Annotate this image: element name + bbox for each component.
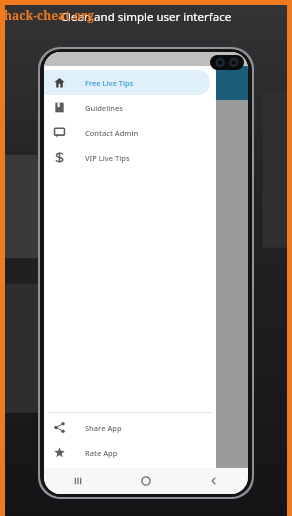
staticText: Contact Admin (85, 128, 139, 138)
button[interactable]: Guidelines (44, 95, 210, 120)
button[interactable]: About (44, 465, 210, 490)
button[interactable]: Rate App (44, 440, 210, 465)
button[interactable]: Home (112, 468, 180, 494)
staticText: Guidelines (85, 103, 123, 113)
button[interactable]: Free Live Tips (44, 70, 210, 95)
staticText: Clean and simple user interface (0, 9, 292, 25)
staticText: Rate App (85, 448, 118, 458)
button[interactable]: Contact Admin (44, 120, 210, 145)
button[interactable]: Recents (44, 468, 112, 494)
staticText: Free Live Tips (85, 78, 134, 88)
button[interactable]: VIP Live Tips (44, 145, 210, 170)
staticText: VIP Live Tips (85, 153, 130, 163)
staticText: hack-cheat.org (4, 7, 95, 23)
button[interactable]: Share App (44, 415, 210, 440)
button[interactable]: Back (180, 468, 248, 494)
staticText: Share App (85, 423, 122, 433)
